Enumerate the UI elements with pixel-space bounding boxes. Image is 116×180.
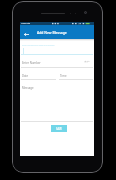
staticText: Date xyxy=(22,74,29,78)
button[interactable]: Message xyxy=(22,86,34,90)
button[interactable]: Time xyxy=(60,74,67,78)
staticText: Add New Message xyxy=(37,30,67,35)
button[interactable]: Back xyxy=(22,29,31,39)
staticText: Enter the text you want to message xyxy=(22,44,55,47)
staticText: Time xyxy=(60,74,67,78)
button[interactable]: Pick contact xyxy=(81,57,93,66)
staticText: Message xyxy=(22,86,34,90)
button[interactable]: Date xyxy=(22,74,29,78)
staticText: 10:30 AM xyxy=(21,22,31,25)
button[interactable]: Enter Number xyxy=(22,61,41,65)
staticText: Enter Number xyxy=(22,61,41,65)
button[interactable]: SAVE xyxy=(51,125,67,132)
staticText: SAVE xyxy=(56,127,62,131)
